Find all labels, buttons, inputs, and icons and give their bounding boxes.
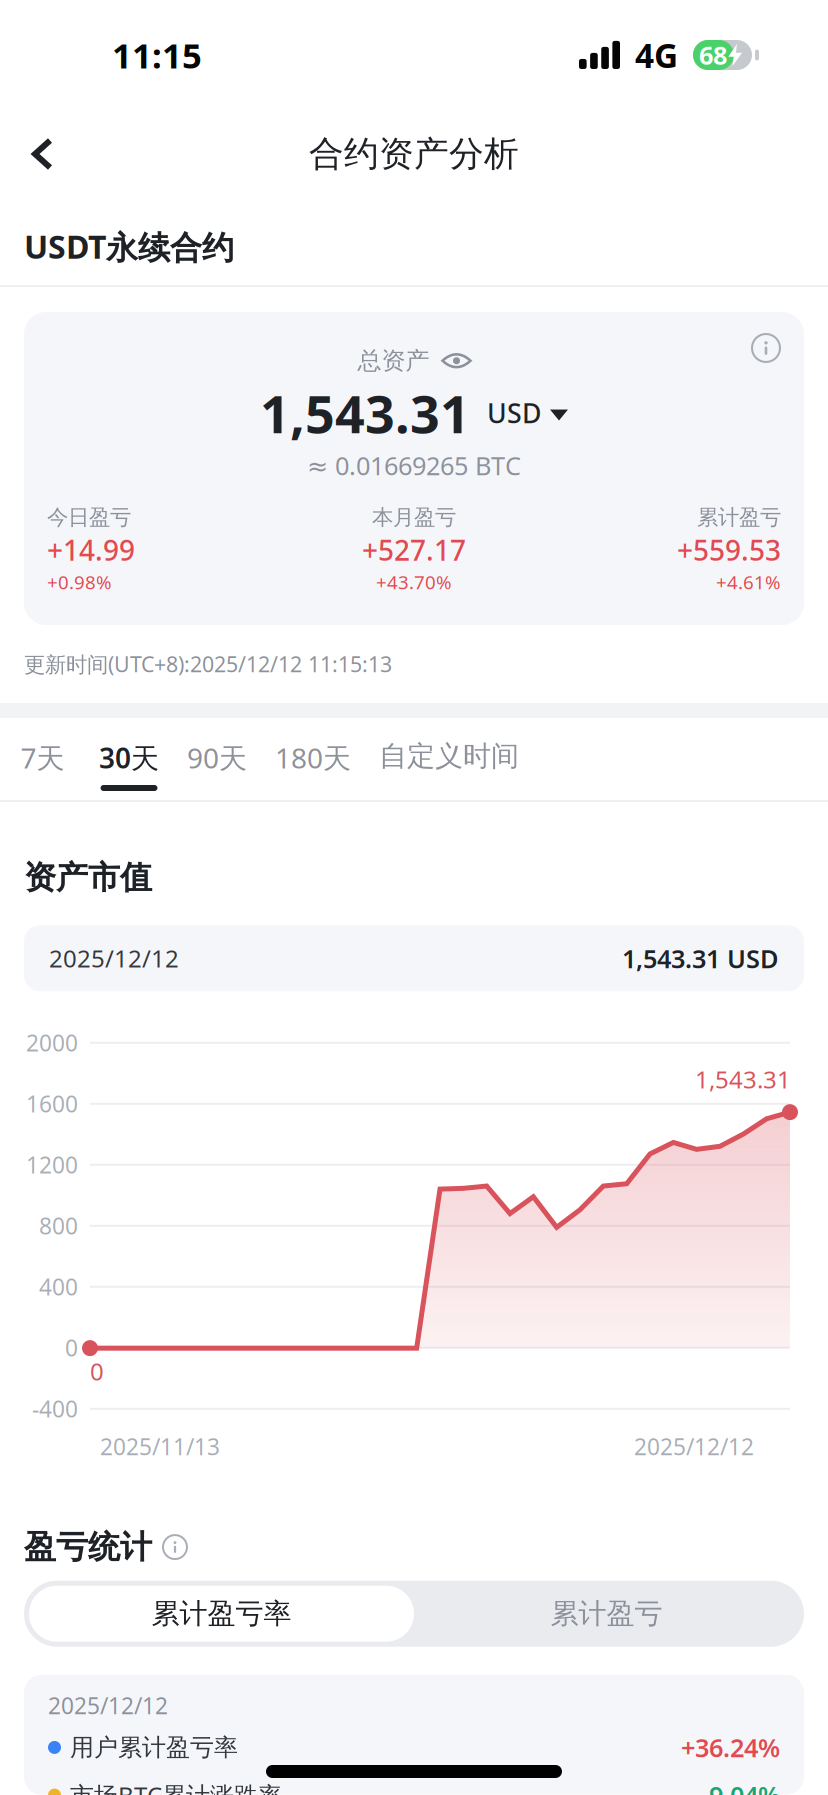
staticText: -400: [32, 1394, 78, 1424]
button[interactable]: 180天: [261, 718, 365, 800]
staticText: 市场BTC累计涨跌率: [70, 1779, 282, 1795]
staticText: +559.53: [677, 531, 781, 569]
staticText: 2000: [26, 1028, 78, 1058]
button[interactable]: Back: [0, 114, 87, 193]
staticText: 90天: [187, 739, 247, 776]
staticText: 68: [699, 38, 727, 72]
staticText: 本月盈亏: [372, 504, 456, 530]
staticText: 资产市值: [24, 858, 152, 897]
staticText: 2025/12/12: [49, 942, 179, 974]
staticText: 1,543.31 USD: [622, 941, 779, 975]
staticText: +4.61%: [716, 570, 781, 594]
button[interactable]: 自定义时间: [365, 718, 533, 800]
staticText: +527.17: [362, 531, 466, 569]
staticText: +0.98%: [47, 570, 112, 594]
staticText: 1,543.31: [695, 1063, 791, 1095]
staticText: 4G: [635, 33, 678, 77]
staticText: 800: [39, 1211, 78, 1241]
staticText: 400: [39, 1272, 78, 1302]
staticText: 1600: [26, 1089, 78, 1119]
staticText: 更新时间(UTC+8):2025/12/12 11:15:13: [24, 650, 392, 678]
staticText: 180天: [275, 739, 351, 776]
staticText: 用户累计盈亏率: [70, 1733, 238, 1762]
staticText: 盈亏统计: [24, 1527, 152, 1567]
staticText: +14.99: [47, 531, 135, 569]
staticText: 累计盈亏率: [151, 1596, 291, 1631]
staticText: 11:15: [112, 32, 202, 78]
staticText: 总资产: [357, 346, 429, 375]
staticText: ≈ 0.01669265 BTC: [307, 448, 521, 482]
button[interactable]: Info: [734, 312, 804, 380]
staticText: 今日盈亏: [47, 504, 131, 530]
staticText: 0: [90, 1355, 104, 1387]
staticText: 7天: [20, 739, 64, 776]
staticText: 合约资产分析: [309, 133, 519, 175]
staticText: 累计盈亏: [697, 504, 781, 530]
staticText: 1200: [26, 1150, 78, 1180]
staticText: 自定义时间: [379, 739, 519, 773]
staticText: +36.24%: [681, 1731, 780, 1764]
staticText: 0: [65, 1333, 78, 1363]
staticText: USDT永续合约: [24, 225, 234, 268]
staticText: 2025/12/12: [48, 1690, 168, 1721]
button[interactable]: 90天: [173, 718, 261, 800]
staticText: 30天: [99, 739, 159, 776]
staticText: +43.70%: [376, 570, 452, 594]
button[interactable]: 累计盈亏: [414, 1586, 799, 1642]
staticText: -9.04%: [701, 1778, 780, 1795]
staticText: USD: [487, 395, 541, 431]
button[interactable]: 30天: [85, 718, 173, 800]
button[interactable]: 7天: [0, 718, 85, 800]
staticText: 1,543.31: [260, 378, 470, 448]
staticText: 2025/11/13: [100, 1431, 220, 1461]
staticText: 2025/12/12: [634, 1431, 754, 1461]
button[interactable]: 累计盈亏率: [29, 1586, 414, 1642]
staticText: 累计盈亏: [550, 1596, 662, 1631]
